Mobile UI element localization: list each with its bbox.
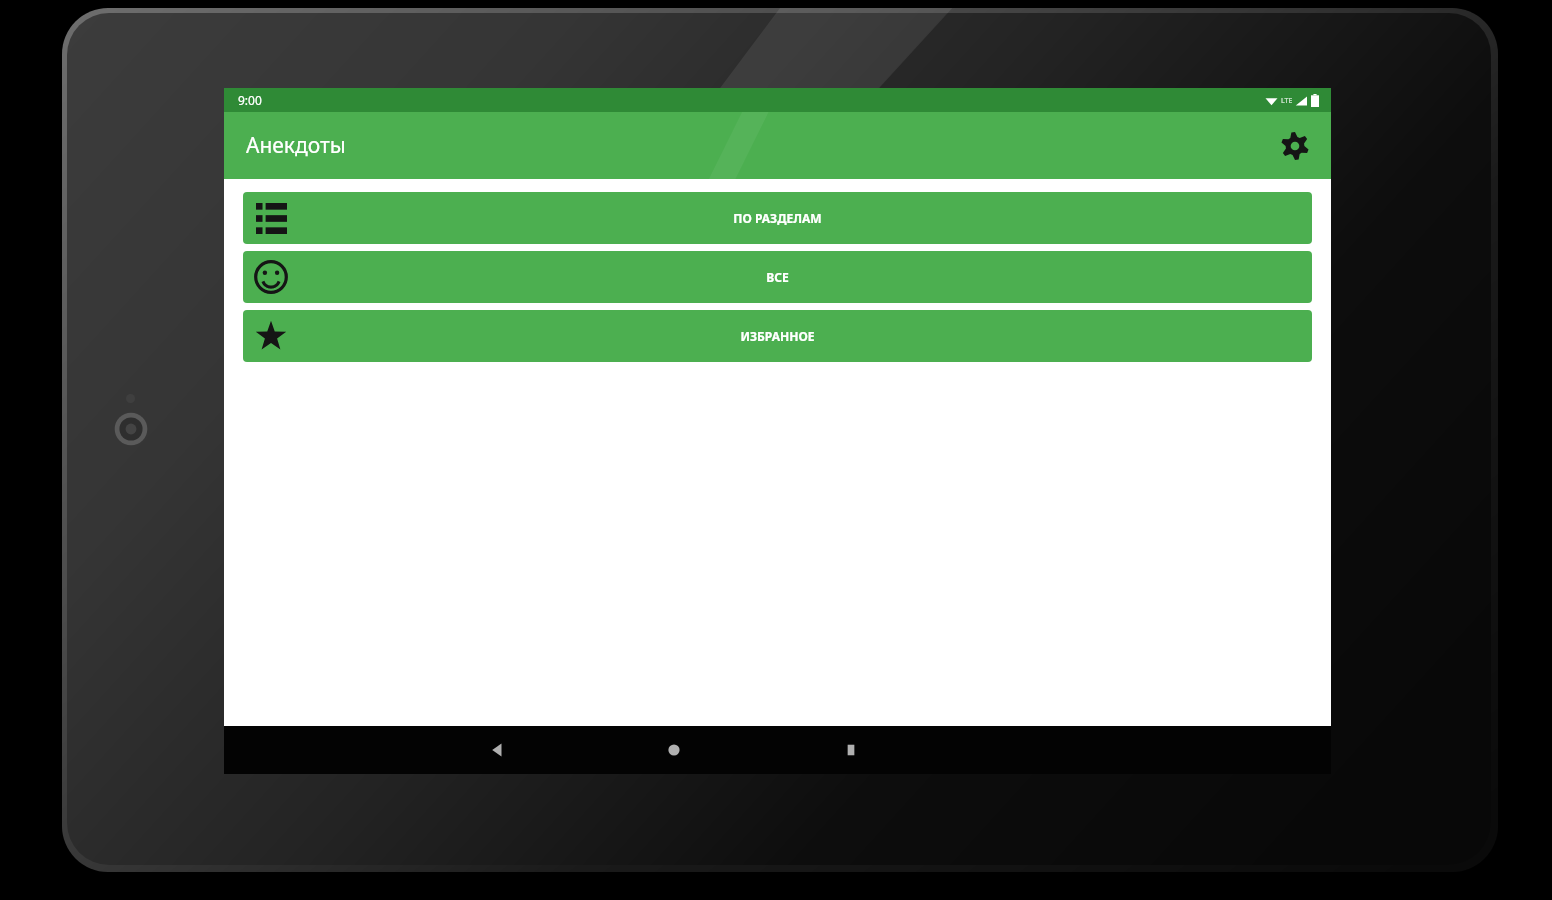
staticText: LTE <box>1281 96 1293 106</box>
button[interactable]: Recent apps <box>828 727 874 773</box>
button[interactable]: Settings <box>1271 122 1319 170</box>
button[interactable]: Home <box>651 727 697 773</box>
staticText: 9:00 <box>238 92 262 108</box>
button[interactable]: Back <box>474 727 520 773</box>
staticText: ВСЕ <box>766 269 789 285</box>
button[interactable]: ВСЕ <box>243 251 1312 303</box>
staticText: Анекдоты <box>246 131 346 160</box>
button[interactable]: ПО РАЗДЕЛАМ <box>243 192 1312 244</box>
button[interactable]: ИЗБРАННОЕ <box>243 310 1312 362</box>
staticText: ПО РАЗДЕЛАМ <box>733 210 822 226</box>
staticText: ИЗБРАННОЕ <box>740 328 815 344</box>
